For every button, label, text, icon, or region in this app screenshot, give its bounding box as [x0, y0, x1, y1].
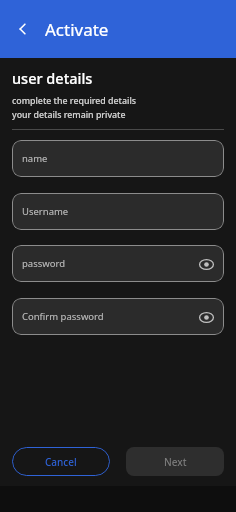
button[interactable]: name	[12, 140, 224, 177]
staticText: Confirm password	[22, 310, 104, 323]
staticText: password	[22, 257, 66, 270]
button[interactable]: Show password	[197, 255, 215, 273]
button[interactable]: Show password	[197, 308, 215, 326]
staticText: Activate	[45, 18, 109, 41]
staticText: user details	[12, 68, 93, 88]
staticText: Next	[164, 455, 187, 469]
button[interactable]: Next	[126, 447, 224, 476]
button[interactable]: Back	[10, 16, 36, 42]
staticText: complete the required details	[12, 95, 137, 107]
button[interactable]: Cancel	[12, 447, 110, 476]
staticText: your details remain private	[12, 109, 126, 121]
staticText: Cancel	[45, 455, 77, 469]
staticText: Username	[22, 205, 69, 218]
staticText: name	[22, 152, 48, 165]
button[interactable]: Confirm password	[12, 298, 224, 335]
button[interactable]: Username	[12, 193, 224, 230]
button[interactable]: password	[12, 245, 224, 282]
